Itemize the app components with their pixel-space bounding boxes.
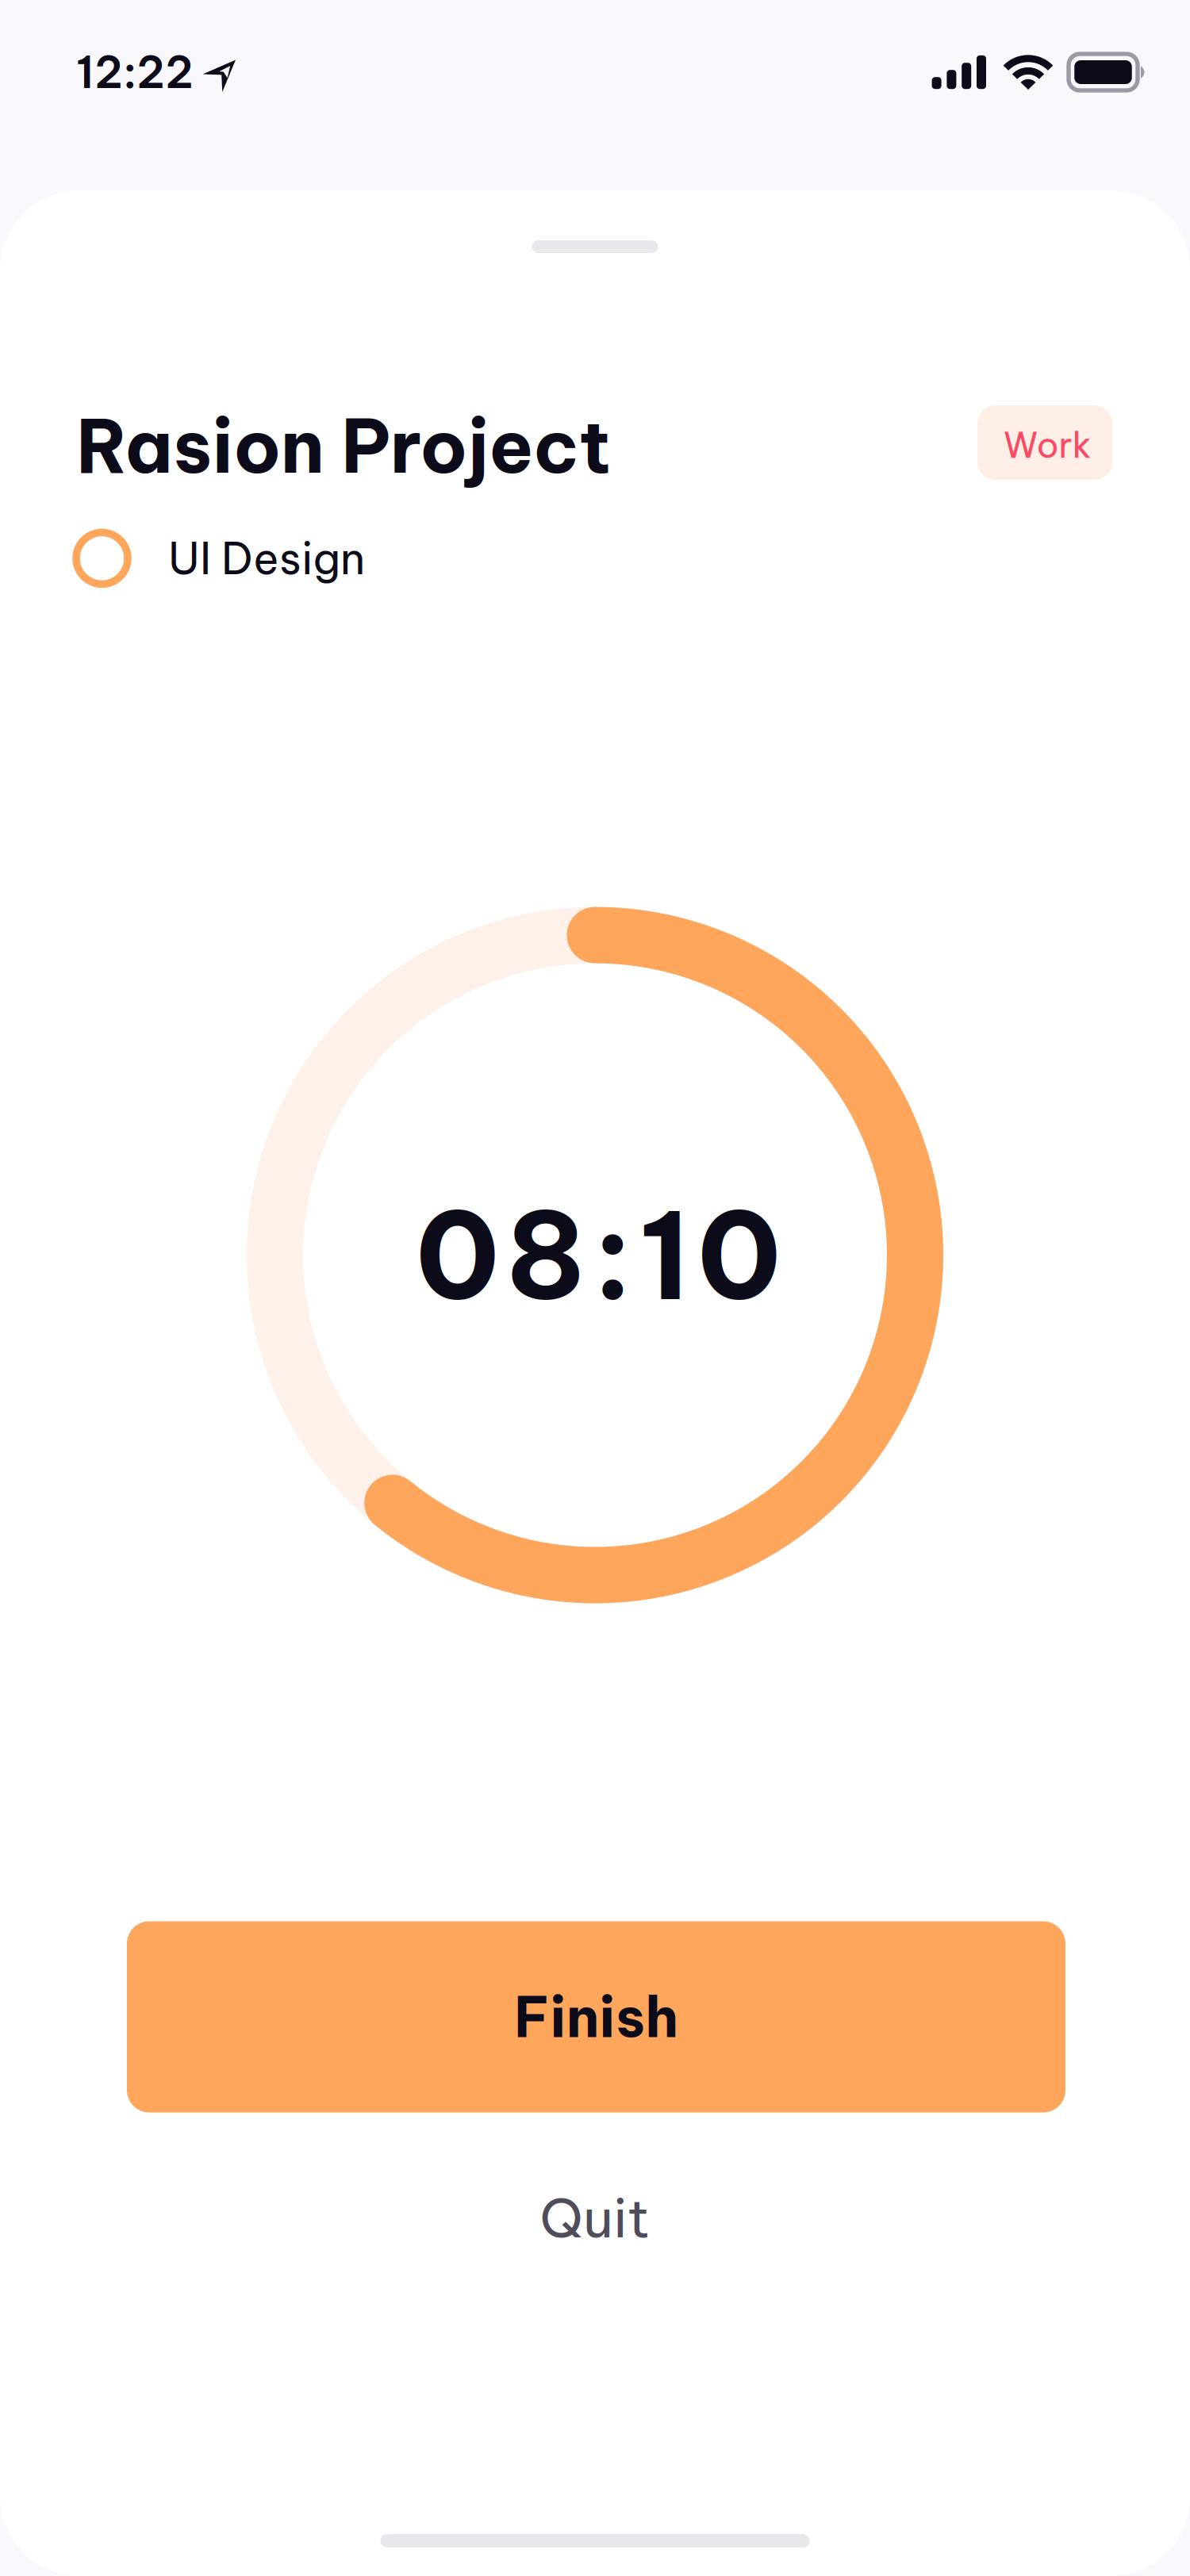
staticText: 12:22 bbox=[76, 45, 194, 100]
staticText: Work bbox=[1003, 423, 1091, 467]
staticText: Finish bbox=[514, 1982, 678, 2052]
staticText: UI Design bbox=[168, 531, 365, 586]
button[interactable]: Finish bbox=[127, 1921, 1065, 2112]
staticText: 08:10 bbox=[416, 1180, 781, 1331]
button[interactable]: Work bbox=[977, 405, 1112, 480]
staticText: Quit bbox=[539, 2185, 651, 2251]
button[interactable]: Quit bbox=[0, 2167, 1190, 2269]
staticText: Rasion Project bbox=[76, 400, 611, 492]
button[interactable]: UI Design bbox=[0, 531, 1190, 586]
